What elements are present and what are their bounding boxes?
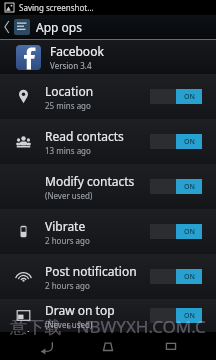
staticText: 意下载 • NBWYXH.COM.C: [10, 315, 206, 338]
staticText: Vibrate: [45, 218, 86, 234]
staticText: 2 hours ago: [45, 235, 90, 246]
staticText: (Never used): [45, 319, 93, 330]
staticText: Version 3.4: [50, 60, 92, 71]
staticText: 25 mins ago: [45, 100, 91, 111]
staticText: ON: [184, 137, 195, 147]
button[interactable]: Toggle on: [150, 269, 202, 284]
button[interactable]: Toggle on: [150, 308, 202, 323]
staticText: ON: [184, 227, 195, 237]
staticText: ON: [184, 182, 195, 192]
staticText: Draw on top: [45, 302, 115, 318]
staticText: ON: [184, 92, 195, 102]
staticText: Post notification: [45, 263, 137, 279]
button[interactable]: Recent apps: [154, 332, 188, 360]
staticText: Location: [45, 83, 94, 99]
button[interactable]: Location: [0, 74, 216, 119]
button[interactable]: Vibrate: [0, 209, 216, 254]
button[interactable]: Home: [91, 332, 125, 360]
button[interactable]: Facebook: [0, 40, 216, 74]
button[interactable]: Toggle on: [150, 134, 202, 149]
staticText: ON: [184, 311, 195, 321]
staticText: (Never used): [45, 190, 93, 201]
staticText: 2 hours ago: [45, 280, 90, 291]
button[interactable]: Back: [29, 332, 63, 360]
button[interactable]: Draw on top: [0, 299, 216, 332]
staticText: Modify contacts: [45, 173, 135, 189]
staticText: 13 mins ago: [45, 145, 91, 156]
button[interactable]: Toggle on: [150, 224, 202, 239]
staticText: Saving screenshot...: [19, 2, 94, 13]
staticText: ON: [184, 272, 195, 282]
staticText: App ops: [36, 19, 82, 35]
button[interactable]: Navigate up: [0, 15, 88, 39]
button[interactable]: Modify contacts: [0, 164, 216, 209]
staticText: Facebook: [50, 43, 104, 59]
button[interactable]: Read contacts: [0, 119, 216, 164]
button[interactable]: Post notification: [0, 254, 216, 299]
staticText: Read contacts: [45, 128, 124, 144]
button[interactable]: Toggle on: [150, 89, 202, 104]
button[interactable]: Toggle on: [150, 179, 202, 194]
